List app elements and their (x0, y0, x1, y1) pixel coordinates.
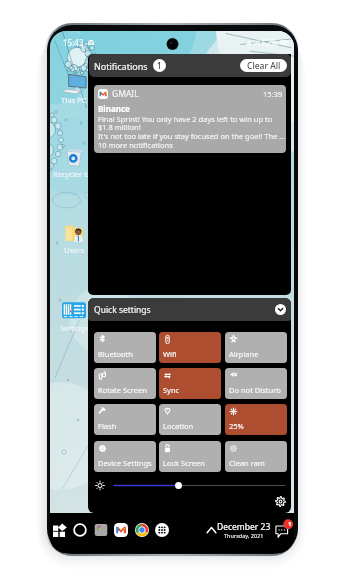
staticText: 1 (157, 60, 162, 71)
button[interactable]: Recycler bin (50, 144, 98, 179)
staticText: Settings (60, 323, 89, 333)
button[interactable]: 25% (225, 404, 287, 435)
button[interactable]: Chrome (132, 520, 152, 540)
button[interactable]: Notifications (275, 523, 290, 538)
staticText: Bluetooth (98, 349, 133, 359)
button[interactable]: Lock Screen (159, 441, 221, 472)
button[interactable]: December 23 (216, 521, 272, 539)
staticText: Airplane (229, 349, 259, 359)
button[interactable]: Wifi (159, 332, 221, 363)
staticText: Sync (163, 385, 180, 395)
button[interactable]: Do not Disturb (225, 368, 287, 399)
staticText: Device Settings (98, 458, 152, 468)
staticText: 15:39 (263, 89, 283, 99)
staticText: Wifi (163, 349, 177, 359)
button[interactable]: Device Settings (94, 441, 156, 472)
button[interactable]: Collapse quick settings (275, 304, 286, 315)
staticText: 62% (262, 37, 278, 48)
staticText: December 23 (217, 521, 271, 533)
staticText: Location (163, 421, 194, 431)
button[interactable]: Airplane (225, 332, 287, 363)
button[interactable]: Show hidden icons (206, 524, 217, 536)
button[interactable]: Rotate Screen (94, 368, 156, 399)
button[interactable]: Clean ram (225, 441, 287, 472)
staticText: Do not Disturb (229, 385, 281, 395)
staticText: 1 (288, 520, 292, 528)
staticText: Lock Screen (163, 458, 205, 468)
staticText: Recycler bin (53, 169, 96, 179)
button[interactable]: Notifications (89, 54, 291, 77)
staticText: Rotate Screen (98, 385, 147, 395)
button[interactable]: Gmail (111, 520, 131, 540)
button[interactable]: Task view (91, 520, 111, 540)
button[interactable]: Location (159, 404, 221, 435)
staticText: 10 more notifications (98, 140, 173, 150)
button[interactable]: Sync (159, 368, 221, 399)
staticText: This PC (61, 95, 87, 105)
staticText: Clean ram (229, 458, 265, 468)
staticText: It's not too late if you stay focused on… (98, 131, 286, 141)
button[interactable]: Clear All (240, 59, 287, 72)
staticText: Final Sprint! You only have 2 days left … (98, 114, 273, 124)
staticText: $1.8 million! (98, 122, 141, 132)
staticText: 25% (229, 421, 244, 431)
button[interactable]: All apps (152, 520, 172, 540)
button[interactable]: Quick settings (88, 298, 291, 321)
button[interactable]: GMAIL (94, 85, 286, 153)
staticText: Binance (98, 103, 130, 114)
button[interactable]: Start (50, 520, 70, 540)
staticText: Thursday, 2021 (224, 532, 264, 539)
staticText: 15:43 (63, 37, 84, 48)
staticText: Clear All (247, 60, 281, 72)
button[interactable]: Search (70, 520, 90, 540)
button[interactable]: Users (50, 220, 98, 255)
staticText: Flash (98, 421, 117, 431)
button[interactable]: This PC (50, 70, 98, 105)
button[interactable]: Flash (94, 404, 156, 435)
staticText: Notifications (94, 60, 148, 72)
button[interactable]: Settings (50, 298, 98, 333)
staticText: GMAIL (112, 88, 139, 100)
staticText: Quick settings (94, 304, 151, 316)
staticText: Users (64, 245, 84, 255)
button[interactable]: Bluetooth (94, 332, 156, 363)
button[interactable]: Settings (275, 496, 286, 507)
